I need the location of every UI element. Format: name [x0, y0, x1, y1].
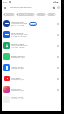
staticText: Atlas Reels Updated 5 Jun	[11, 77, 24, 81]
button[interactable]: Prism Story Updated 2 Jun	[2, 84, 61, 95]
button[interactable]: Search	[51, 5, 56, 10]
button[interactable]: Solar Records Set up profile now 6.4 MB …	[2, 29, 61, 40]
staticText: Harbor Notes Updated 8 Jun	[11, 66, 24, 70]
staticText: Updated	[37, 13, 45, 16]
button[interactable]: Account	[56, 5, 61, 10]
staticText: Prism Story Updated 2 Jun	[11, 88, 24, 92]
staticText: Terrace Health Nova offline today 112 MB…	[11, 43, 28, 49]
button[interactable]: Harbor Notes Updated 8 Jun	[2, 62, 61, 73]
staticText: Nebula Player Nostalgia storage Jun 21 ·…	[11, 21, 28, 27]
staticText: Mosaic Notes Updated 1 Jun	[11, 96, 24, 100]
staticText: Ready to update	[19, 13, 34, 16]
staticText: Installed	[6, 13, 14, 16]
button[interactable]: Navigation menu	[2, 5, 7, 10]
staticText: 9:41	[3, 1, 8, 4]
button[interactable]: Games	[47, 13, 56, 16]
staticText: Solar Records Set up profile now 6.4 MB …	[11, 32, 28, 38]
button[interactable]: Update	[29, 22, 37, 26]
button[interactable]: Nebula Player Nostalgia storage Jun 21 ·…	[2, 18, 61, 29]
staticText: Update	[30, 23, 37, 26]
button[interactable]: Bloom Balance Updated 12 Jun	[2, 51, 61, 62]
button[interactable]: Ready to update	[16, 13, 35, 16]
button[interactable]: Installed	[3, 13, 15, 16]
staticText: ▴ ▮ ▬	[53, 1, 59, 4]
staticText: Bloom Balance Updated 12 Jun	[11, 55, 26, 59]
button[interactable]: Updated	[36, 13, 46, 16]
button[interactable]: Atlas Reels Updated 5 Jun	[2, 73, 61, 84]
button[interactable]: Terrace Health Nova offline today 112 MB…	[2, 40, 61, 51]
staticText: Games	[48, 13, 55, 16]
staticText: Settings and privacy	[10, 6, 32, 9]
